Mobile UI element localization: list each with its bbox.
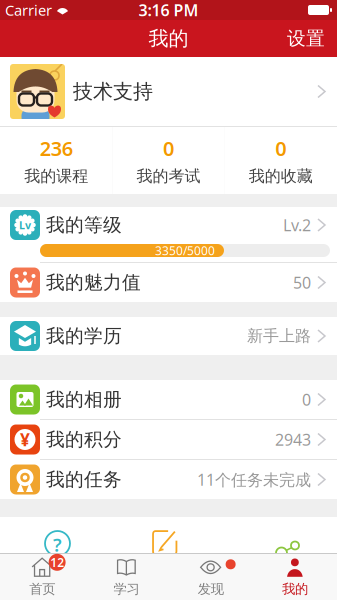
staticText: 我的收藏 [249,166,313,186]
staticText: 新手上路 [247,326,311,346]
button[interactable]: 12 [0,554,84,600]
button[interactable]: 0 [225,127,337,194]
staticText: 我的魅力值 [46,271,141,294]
staticText: 11个任务未完成 [197,469,311,490]
staticText: 3350/5000 [155,242,215,258]
staticText: Lv [19,218,31,232]
staticText: 设置 [287,27,325,50]
button[interactable]: ¥ [0,420,337,459]
staticText: 首页 [29,581,55,597]
staticText: 技术支持 [73,79,153,104]
staticText: 我的课程 [24,166,88,186]
staticText: 12 [50,554,64,570]
button[interactable]: 我的 [253,554,337,600]
staticText: 0 [302,389,311,410]
staticText: 3:16 PM [138,0,198,21]
staticText: 236 [40,135,73,161]
staticText: Carrier [5,0,52,20]
staticText: 我的等级 [46,213,122,236]
button[interactable]: 发现 [168,554,253,600]
button[interactable]: 意见反馈 [152,529,178,555]
button[interactable]: 学习 [84,554,168,600]
staticText: 50 [293,272,311,293]
staticText: 我的 [148,26,188,51]
staticText: 我的 [282,581,308,597]
staticText: 学习 [113,581,139,597]
button[interactable]: 常见问题 [45,531,70,556]
button[interactable]: 我的任务 [0,460,337,499]
staticText: 我的考试 [136,166,200,186]
staticText: 2943 [275,429,311,450]
button[interactable]: 0 [112,127,225,194]
staticText: ¥ [20,428,30,451]
staticText: 我的任务 [46,468,122,491]
staticText: 我的积分 [46,428,122,451]
staticText: Lv.2 [283,214,311,236]
staticText: 0 [275,135,286,161]
button[interactable]: 我的学历 [0,317,337,355]
button[interactable]: 我的相册 [0,380,337,419]
button[interactable]: 我的魅力值 [0,263,337,302]
button[interactable]: 设置 [287,27,337,50]
staticText: 0 [163,135,174,161]
staticText: 我的学历 [46,324,122,347]
staticText: ? [53,532,62,557]
staticText: 发现 [198,581,224,597]
staticText: 我的相册 [46,388,122,411]
button[interactable]: 236 [0,127,112,194]
button[interactable]: 分享 [270,534,293,560]
button[interactable]: 技术支持 [0,57,337,126]
button[interactable]: Lv [0,207,337,243]
